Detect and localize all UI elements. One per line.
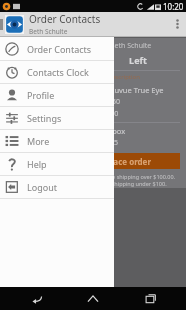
staticText: Acuvue True Eye [106,85,164,95]
button[interactable]: Logout [0,176,114,198]
staticText: Profile [27,89,55,101]
staticText: Beth Schulte [110,41,152,51]
staticText: Beth Schulte [29,27,68,36]
staticText: Place orders for both eyes. [104,187,173,188]
staticText: Order Contacts [29,12,101,26]
staticText: Prescription [106,73,140,81]
button[interactable]: Back [17,287,57,310]
staticText: Free shipping over $100.00. [104,173,176,180]
button[interactable]: Help [0,153,114,175]
button[interactable]: Order Contacts [0,38,114,60]
button[interactable]: Contacts Clock [0,61,114,83]
staticText: Settings [27,112,62,124]
other: App logo [5,15,24,34]
staticText: Place order [106,156,151,167]
button[interactable]: Settings [0,107,114,129]
staticText: Logout [27,181,57,193]
staticText: $25 [106,138,119,148]
staticText: $5 shipping under $100. [104,180,167,187]
staticText: Order Contacts [27,43,92,55]
button[interactable]: More [0,130,114,152]
button[interactable]: More options [168,12,186,36]
staticText: 8.50 [106,97,120,107]
staticText: -3.0 [106,109,119,119]
staticText: Help [27,158,47,170]
button[interactable]: Place order [102,153,180,169]
staticText: 10:20 [163,1,184,12]
staticText: Left [96,54,180,66]
staticText: More [27,135,50,147]
button[interactable]: Profile [0,84,114,106]
button[interactable]: Recent apps [130,287,170,310]
button[interactable]: Home [73,287,113,310]
staticText: Contacts Clock [27,66,89,78]
staticText: 1 box [106,126,126,136]
